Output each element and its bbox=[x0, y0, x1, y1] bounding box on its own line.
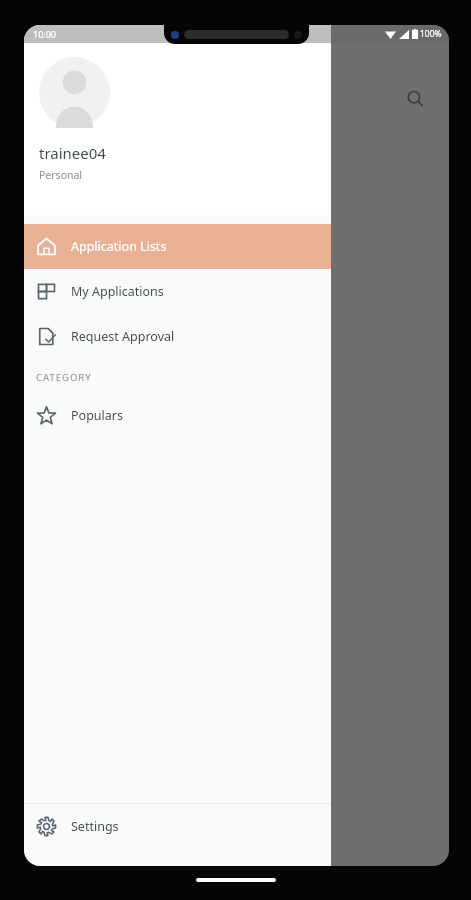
staticText: 10:00 bbox=[33, 28, 57, 40]
button[interactable]: My Applications bbox=[24, 269, 331, 314]
button[interactable]: Settings bbox=[24, 804, 331, 849]
staticText: CATEGORY bbox=[36, 371, 92, 384]
button[interactable]: Search bbox=[397, 81, 433, 117]
staticText: 100% bbox=[420, 28, 442, 40]
staticText: Application Lists bbox=[71, 238, 167, 255]
staticText: Personal bbox=[39, 168, 83, 182]
button[interactable]: Populars bbox=[24, 393, 331, 438]
staticText: trainee04 bbox=[39, 143, 106, 163]
staticText: Request Approval bbox=[71, 328, 175, 345]
staticText: Settings bbox=[71, 818, 119, 835]
button[interactable]: Application Lists bbox=[24, 224, 331, 269]
staticText: My Applications bbox=[71, 283, 164, 300]
staticText: Populars bbox=[71, 407, 123, 424]
button[interactable]: Request Approval bbox=[24, 314, 331, 359]
